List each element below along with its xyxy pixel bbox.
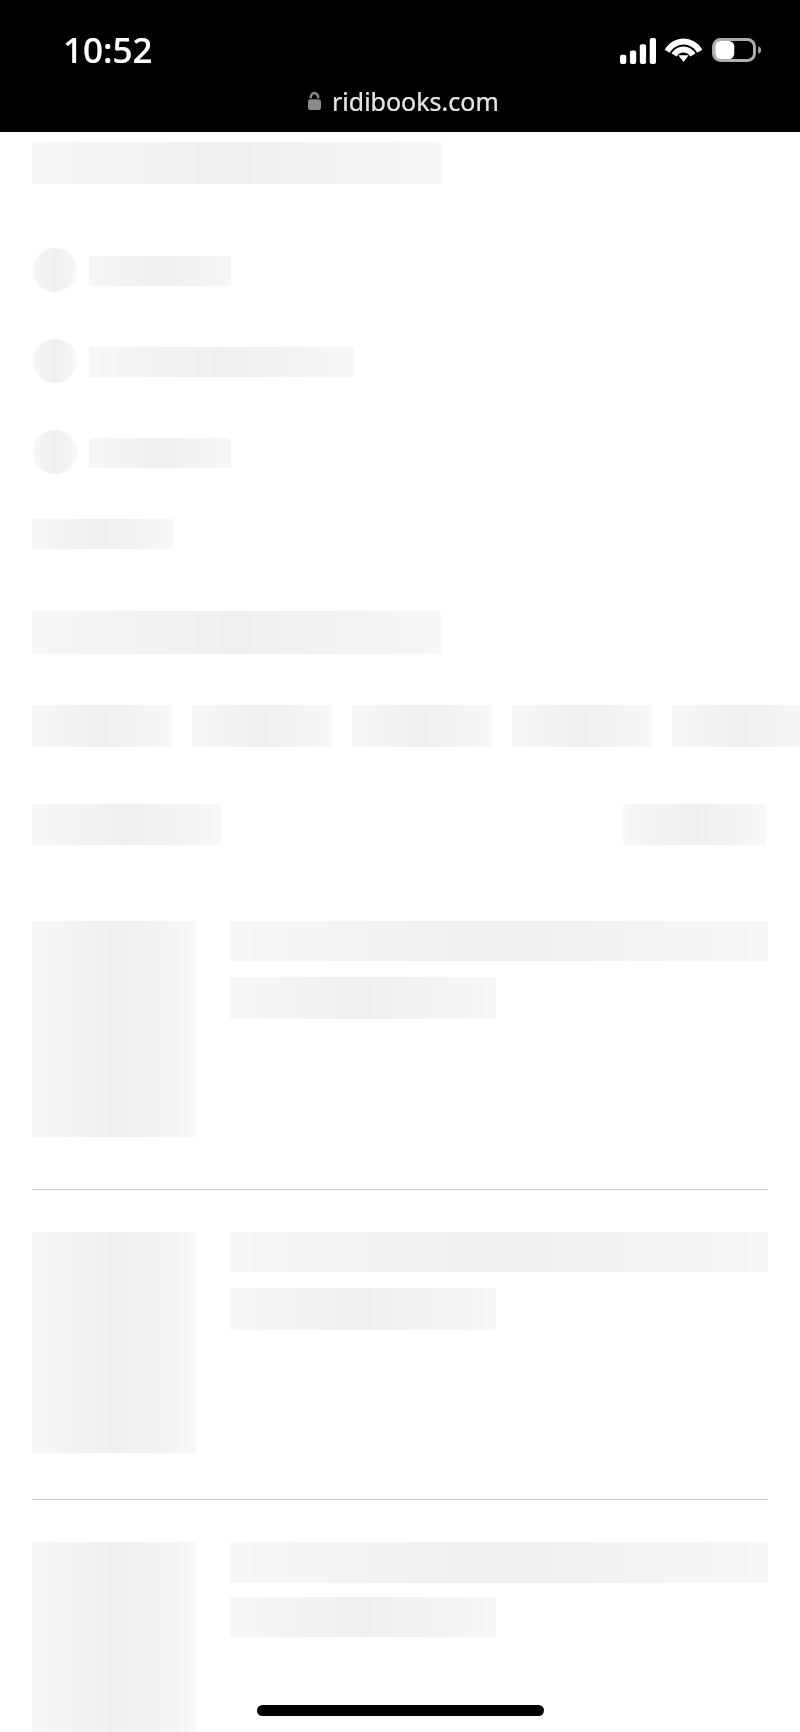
button[interactable]: ridibooks.com <box>295 81 509 121</box>
staticText: 10:52 <box>63 26 153 74</box>
other: Wi-Fi <box>663 34 704 66</box>
button[interactable]: Menu item 3 <box>0 414 800 504</box>
button[interactable]: Menu item 1 <box>0 232 800 322</box>
button[interactable]: Book 3 <box>0 1500 800 1690</box>
button[interactable]: Book 1 <box>0 905 800 1189</box>
other: Cellular signal <box>620 38 656 64</box>
button[interactable]: Menu item 2 <box>0 323 800 413</box>
button[interactable]: Book 2 <box>0 1190 800 1499</box>
staticText: ridibooks.com <box>332 84 499 118</box>
other: Battery <box>711 37 765 63</box>
